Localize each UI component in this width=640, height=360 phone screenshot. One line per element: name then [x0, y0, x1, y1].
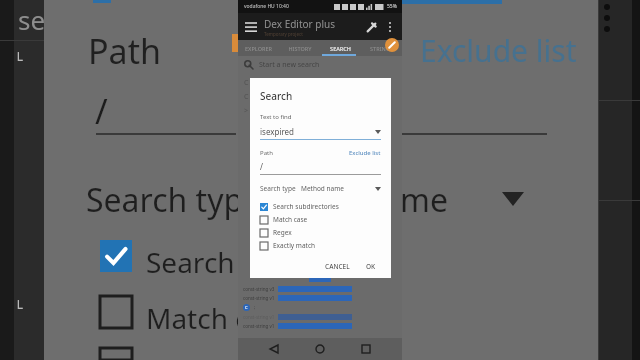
- button[interactable]: EXPLORER: [238, 40, 279, 56]
- button[interactable]: Recent apps: [356, 339, 376, 359]
- staticText: SEARCH: [330, 45, 351, 52]
- staticText: >: [244, 106, 249, 116]
- staticText: Search s: [146, 243, 256, 281]
- staticText: Exclude list: [420, 30, 577, 71]
- staticText: EXPLORER: [245, 45, 272, 52]
- staticText: Exclude list: [349, 149, 381, 157]
- other: Show history: [375, 130, 381, 134]
- button[interactable]: SEARCH: [320, 40, 361, 56]
- staticText: /: [260, 161, 263, 172]
- staticText: Text to find: [260, 113, 292, 121]
- staticText: const-string v1: [243, 314, 275, 320]
- button[interactable]: Open navigation menu: [242, 18, 260, 36]
- button[interactable]: Back: [264, 339, 284, 359]
- button[interactable]: Exclude list: [349, 149, 381, 157]
- button[interactable]: More options: [381, 18, 399, 36]
- staticText: C: [244, 78, 249, 88]
- button[interactable]: STRINGS: [361, 40, 402, 56]
- staticText: Regex: [273, 228, 292, 237]
- staticText: Path: [260, 149, 349, 157]
- button[interactable]: /: [260, 161, 381, 172]
- staticText: Search: [260, 89, 293, 103]
- staticText: me: [400, 178, 448, 222]
- button[interactable]: CANCEL: [320, 259, 355, 274]
- staticText: 55%: [387, 3, 397, 10]
- staticText: const-string v1: [243, 295, 275, 301]
- staticText: Match c: [146, 299, 249, 337]
- staticText: const-string v1: [243, 323, 275, 329]
- other: Select search type: [375, 187, 381, 191]
- staticText: se: [18, 2, 46, 37]
- staticText: isexpired: [260, 126, 375, 137]
- staticText: OK: [366, 262, 376, 271]
- staticText: Search subdirectories: [273, 202, 339, 211]
- staticText: Temporary project: [264, 31, 303, 37]
- button[interactable]: Search type: [260, 184, 381, 193]
- staticText: └: [14, 52, 23, 68]
- staticText: HISTORY: [288, 45, 312, 52]
- staticText: CANCEL: [325, 262, 350, 271]
- staticText: Path: [88, 28, 161, 74]
- staticText: Start a new search: [259, 60, 320, 70]
- staticText: Method name: [301, 184, 375, 193]
- staticText: Search type: [86, 178, 262, 222]
- button[interactable]: HISTORY: [279, 40, 320, 56]
- staticText: Exactly match: [273, 241, 316, 250]
- button[interactable]: Match case: [260, 213, 381, 226]
- button[interactable]: Regex: [260, 226, 381, 239]
- button[interactable]: OK: [361, 259, 381, 274]
- staticText: Dex Editor plus: [264, 17, 336, 31]
- staticText: const-string v3: [243, 286, 275, 292]
- button[interactable]: Start a new search: [238, 56, 402, 73]
- staticText: └: [14, 300, 23, 316]
- button[interactable]: Home: [310, 339, 330, 359]
- staticText: C: [245, 305, 248, 310]
- button[interactable]: Search subdirectories: [260, 200, 381, 213]
- staticText: /: [95, 88, 108, 134]
- staticText: Search type: [260, 184, 296, 193]
- button[interactable]: isexpired: [260, 126, 381, 137]
- staticText: C: [244, 92, 249, 102]
- staticText: ;: [254, 304, 256, 311]
- button[interactable]: Exactly match: [260, 239, 381, 252]
- staticText: STRINGS: [370, 45, 393, 52]
- staticText: Match case: [273, 215, 308, 224]
- staticText: vodafone HU 10:40: [244, 3, 289, 10]
- button[interactable]: Build: [362, 18, 380, 36]
